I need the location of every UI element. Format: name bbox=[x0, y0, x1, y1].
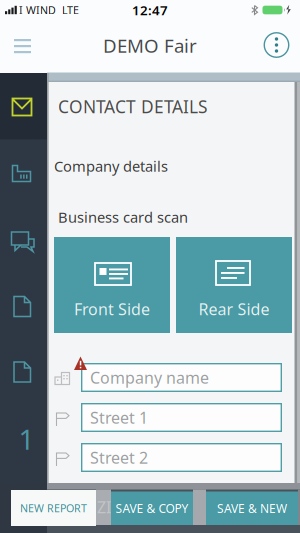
button[interactable] bbox=[0, 73, 300, 533]
staticText: 1 bbox=[18, 420, 34, 458]
staticText: Street 1 bbox=[90, 407, 148, 428]
staticText: I WIND LTE bbox=[19, 3, 79, 17]
button[interactable] bbox=[0, 231, 300, 533]
button[interactable] bbox=[0, 361, 300, 533]
staticText: SAVE & NEW bbox=[217, 500, 287, 516]
button[interactable]: 1 bbox=[3, 419, 50, 459]
button[interactable] bbox=[261, 30, 291, 60]
staticText: Street 2 bbox=[90, 447, 148, 468]
staticText: Business card scan bbox=[58, 207, 188, 227]
staticText: Rear Side bbox=[198, 298, 269, 320]
button[interactable] bbox=[0, 296, 300, 533]
staticText: Front Side bbox=[74, 298, 150, 320]
button[interactable]: SAVE & COPY bbox=[111, 491, 193, 525]
button[interactable] bbox=[6, 26, 40, 60]
staticText: Company details bbox=[54, 156, 168, 176]
button[interactable]: SAVE & NEW bbox=[206, 491, 298, 525]
staticText: CONTACT DETAILS bbox=[58, 95, 208, 118]
staticText: SAVE & COPY bbox=[115, 500, 188, 516]
staticText: Company name bbox=[90, 367, 209, 388]
button[interactable]: NEW REPORT bbox=[11, 490, 96, 526]
staticText: 12:47 bbox=[132, 1, 168, 19]
button[interactable]: Rear Side bbox=[176, 237, 300, 533]
button[interactable]: Front Side bbox=[54, 237, 300, 533]
button[interactable] bbox=[0, 165, 300, 533]
staticText: ZI bbox=[97, 496, 111, 518]
staticText: NEW REPORT bbox=[20, 501, 87, 515]
staticText: DEMO Fair bbox=[103, 33, 197, 58]
